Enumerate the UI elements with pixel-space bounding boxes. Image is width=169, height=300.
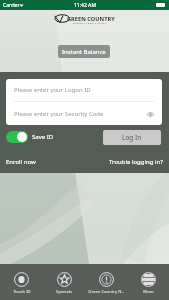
button[interactable]: Show password [145,109,155,119]
staticText: More [143,289,154,295]
button[interactable]: Touch ID [0,269,43,295]
staticText: 11:42 AM [74,2,96,9]
staticText: Log In [122,133,142,142]
staticText: Please enter your Logon ID [14,86,91,94]
staticText: Instant Balance [62,48,106,56]
staticText: Specials [56,289,72,295]
button[interactable]: Instant Balance [58,45,110,58]
button[interactable]: Green Country N.. [85,269,127,295]
staticText: Carrier [3,2,20,9]
button[interactable]: Enroll now [6,158,36,166]
button[interactable]: Please enter your Logon ID [6,79,162,101]
staticText: Save ID [32,133,54,141]
button[interactable]: Save ID [6,131,54,143]
staticText: GREEN COUNTRY [67,15,115,23]
button[interactable]: Trouble logging in? [109,158,163,166]
button[interactable]: Please enter your Security Code [6,102,162,125]
button[interactable]: More [127,269,169,295]
staticText: Green Country N.. [88,289,124,295]
button[interactable]: Log In [103,130,161,145]
staticText: Touch ID [13,289,31,295]
button[interactable]: Specials [43,269,85,295]
staticText: FEDERAL CREDIT UNION [73,21,107,24]
staticText: Please enter your Security Code [14,110,104,118]
